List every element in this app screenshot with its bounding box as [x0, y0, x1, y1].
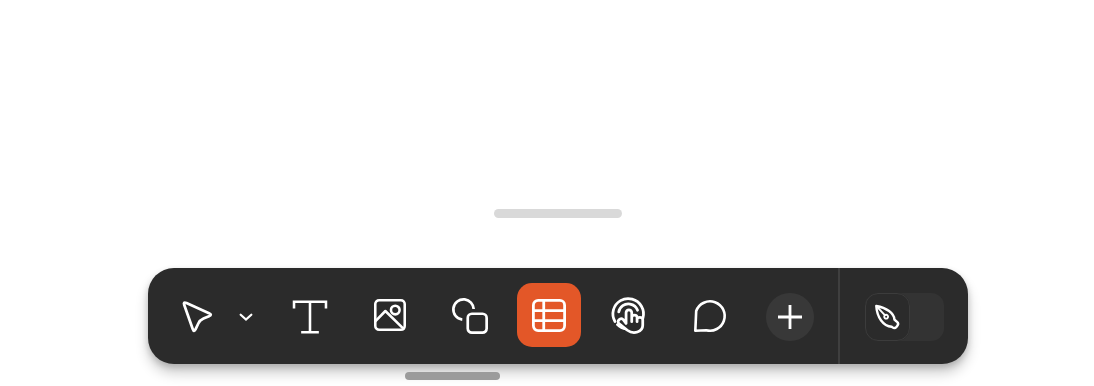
button[interactable]: Pen tool	[865, 293, 910, 341]
button[interactable]: Add	[766, 293, 814, 341]
button[interactable]: Shapes tool	[444, 290, 496, 342]
button[interactable]: Tool options	[220, 291, 272, 343]
button[interactable]: Comment tool	[684, 290, 736, 342]
button[interactable]: Select tool	[171, 290, 223, 342]
button[interactable]: Image tool	[364, 289, 416, 341]
button[interactable]: Text tool	[284, 291, 336, 343]
button[interactable]: Interaction tool	[604, 290, 656, 342]
button[interactable]: Table tool	[517, 283, 581, 347]
